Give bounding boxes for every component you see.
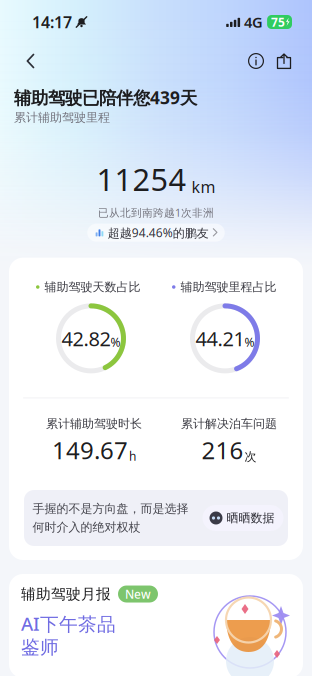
staticText: h [129,448,136,464]
staticText: % [244,334,254,350]
button[interactable]: Info [242,47,270,75]
staticText: 216 [201,434,243,466]
button[interactable]: 超越94.46%的鹏友 [87,224,225,242]
staticText: 累计辅助驾驶时长 [46,416,142,431]
staticText: 11254 [96,159,186,199]
staticText: 辅助驾驶已陪伴您439天 [14,86,197,109]
staticText: 辅助驾驶里程占比 [180,280,276,294]
staticText: 149.67 [52,434,128,466]
staticText: 4G [244,12,263,32]
staticText: 累计辅助驾驶里程 [14,110,110,125]
staticText: AI下午茶品鉴师 [21,611,116,659]
staticText: New [125,586,151,602]
staticText: 75 [271,14,285,30]
staticText: 辅助驾驶天数占比 [44,280,140,294]
button[interactable]: 辅助驾驶月报 [9,560,303,676]
staticText: 42.82 [61,325,110,352]
staticText: km [191,176,215,197]
button[interactable]: Back [12,46,48,76]
staticText: 次 [244,449,256,464]
staticText: 辅助驾驶月报 [21,585,111,603]
button[interactable]: 晒晒数据 [202,505,283,531]
staticText: 14:17 [32,11,72,33]
staticText: 手握的不是方向盘，而是选择 [32,501,188,516]
staticText: 已从北到南跨越1次非洲 [98,205,214,220]
button[interactable]: Share [270,47,298,75]
staticText: % [110,334,120,350]
staticText: 超越94.46%的鹏友 [108,225,209,241]
staticText: 44.21 [195,325,244,352]
staticText: 晒晒数据 [226,511,274,525]
staticText: 何时介入的绝对权杖 [32,520,140,535]
staticText: 累计解决泊车问题 [181,416,277,431]
